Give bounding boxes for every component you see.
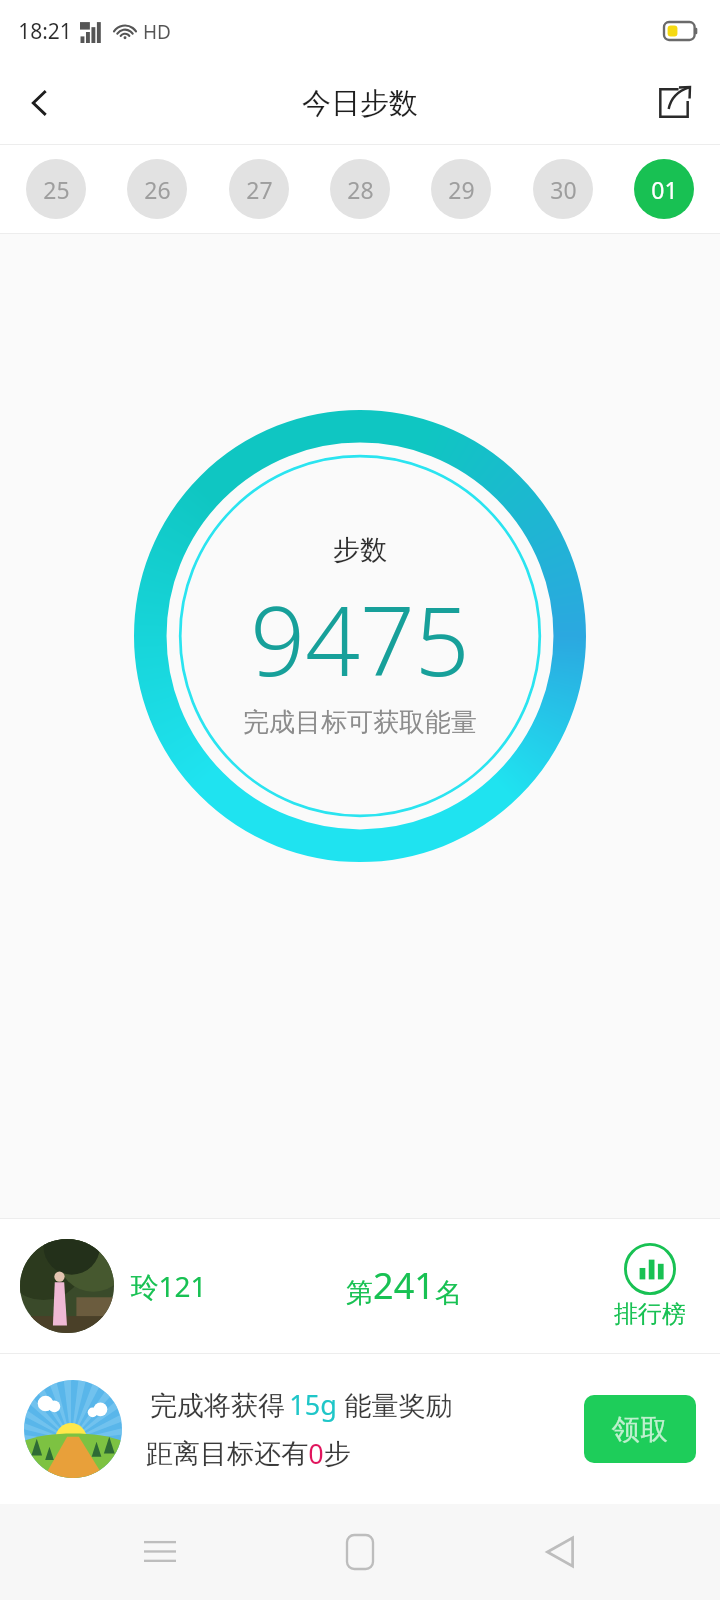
staticText: 玲121 — [130, 1267, 207, 1305]
staticText: 能量奖励 — [337, 1386, 453, 1423]
button[interactable]: 01 — [634, 159, 694, 219]
button[interactable]: Back — [8, 71, 72, 135]
button[interactable]: 玲121 — [0, 1218, 720, 1353]
staticText: 241 — [373, 1261, 435, 1310]
button[interactable]: 30 — [533, 159, 593, 219]
staticText: 步数 — [333, 533, 387, 567]
staticText: 完成目标可获取能量 — [243, 706, 477, 739]
button[interactable]: 25 — [26, 159, 86, 219]
staticText: 领取 — [612, 1412, 668, 1447]
staticText: 名 — [435, 1276, 462, 1310]
button[interactable]: 排行榜 — [614, 1243, 686, 1329]
button[interactable]: 29 — [431, 159, 491, 219]
staticText: 今日步数 — [302, 85, 418, 122]
staticText: 0 — [308, 1435, 324, 1472]
staticText: 18:21 — [18, 17, 72, 46]
staticText: 15g — [289, 1386, 337, 1423]
button[interactable]: 28 — [330, 159, 390, 219]
staticText: 28 — [347, 174, 374, 205]
staticText: 距离目标还有 — [146, 1437, 308, 1471]
staticText: 9475 — [250, 573, 470, 704]
button[interactable]: Back — [520, 1512, 600, 1592]
staticText: 29 — [448, 174, 475, 205]
staticText: HD — [143, 19, 171, 45]
button[interactable]: 26 — [127, 159, 187, 219]
button[interactable]: 领取 — [584, 1395, 696, 1463]
staticText: 01 — [651, 174, 678, 205]
staticText: 25 — [43, 174, 70, 205]
staticText: 26 — [144, 174, 171, 205]
staticText: 步 — [324, 1437, 351, 1471]
staticText: 排行榜 — [614, 1299, 686, 1329]
staticText: 30 — [550, 174, 577, 205]
button[interactable]: 27 — [229, 159, 289, 219]
button[interactable]: Share — [642, 71, 706, 135]
button[interactable]: Recents — [120, 1512, 200, 1592]
button[interactable]: Home — [320, 1512, 400, 1592]
staticText: 27 — [246, 174, 273, 205]
staticText: 完成将获得 — [146, 1386, 289, 1423]
staticText: 第 — [346, 1276, 373, 1310]
